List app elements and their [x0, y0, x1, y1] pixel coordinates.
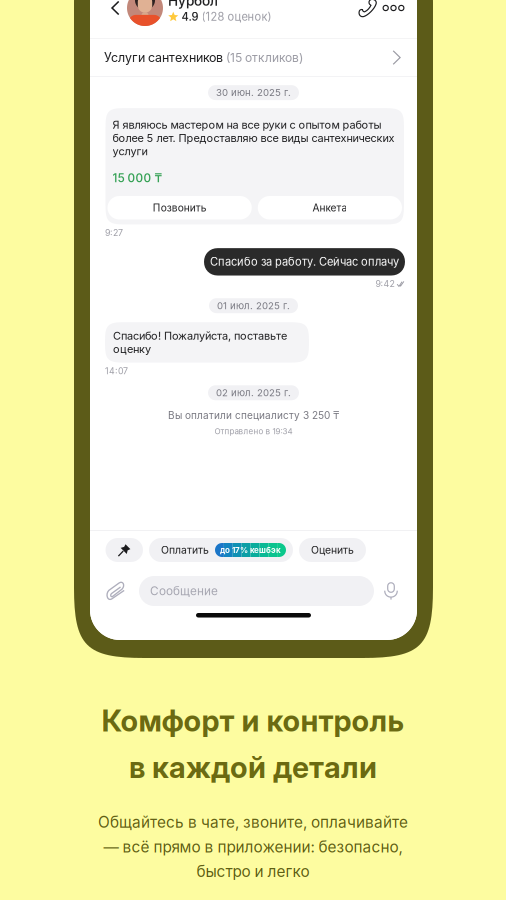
button[interactable]: Прикрепить	[105, 576, 127, 606]
button[interactable]: Закрепить	[105, 538, 143, 562]
staticText: в каждой детали	[129, 749, 377, 785]
staticText: Спасибо за работу. Сейчас оплачу	[210, 255, 399, 268]
staticText: (15 откликов)	[223, 50, 303, 65]
button[interactable]: Услуги сантехников	[90, 39, 417, 76]
button[interactable]: Оценить	[299, 538, 366, 562]
staticText: 15 000 ₸	[112, 171, 162, 185]
staticText: 14:07	[105, 366, 128, 376]
staticText: Отправлено в 19:34	[214, 426, 292, 436]
staticText: быстро и легко	[196, 862, 309, 881]
staticText: Комфорт и контроль	[101, 703, 404, 738]
staticText: Общайтесь в чате, звоните, оплачивайте	[98, 813, 408, 832]
staticText: Позвонить	[153, 202, 207, 214]
staticText: Оплатить	[161, 544, 209, 556]
button[interactable]: Оплатить	[149, 538, 293, 562]
staticText: до 17% кешбэк	[220, 545, 281, 555]
staticText: Услуги сантехников	[104, 50, 223, 65]
button[interactable]: Голосовое сообщение	[376, 576, 406, 606]
button[interactable]: Назад	[104, 0, 127, 25]
staticText: 01 июл. 2025 г.	[217, 300, 290, 311]
staticText: Вы оплатили специалисту 3 250 ₸	[168, 409, 339, 421]
staticText: 02 июл. 2025 г.	[216, 387, 291, 399]
staticText: — всё прямо в приложении: безопасно,	[103, 837, 402, 856]
staticText: Я являюсь мастером на все руки с опытом …	[112, 118, 394, 158]
staticText: Нурбол	[168, 0, 218, 9]
staticText: Оценить	[311, 544, 354, 556]
staticText: Сообщение	[150, 584, 218, 598]
staticText: 9:27	[105, 227, 123, 238]
button[interactable]: Анкета	[258, 196, 402, 219]
staticText: Спасибо! Пожалуйста, поставьте оценку	[113, 329, 287, 356]
staticText: 30 июн. 2025 г.	[216, 87, 291, 98]
staticText: 9:42	[375, 278, 394, 289]
button[interactable]: Ещё	[380, 0, 407, 20]
staticText: 4.9	[181, 10, 198, 23]
staticText: (128 оценок)	[201, 10, 271, 23]
staticText: Анкета	[312, 202, 347, 214]
button[interactable]: Позвонить	[107, 196, 252, 219]
button[interactable]: Позвонить	[355, 0, 380, 20]
